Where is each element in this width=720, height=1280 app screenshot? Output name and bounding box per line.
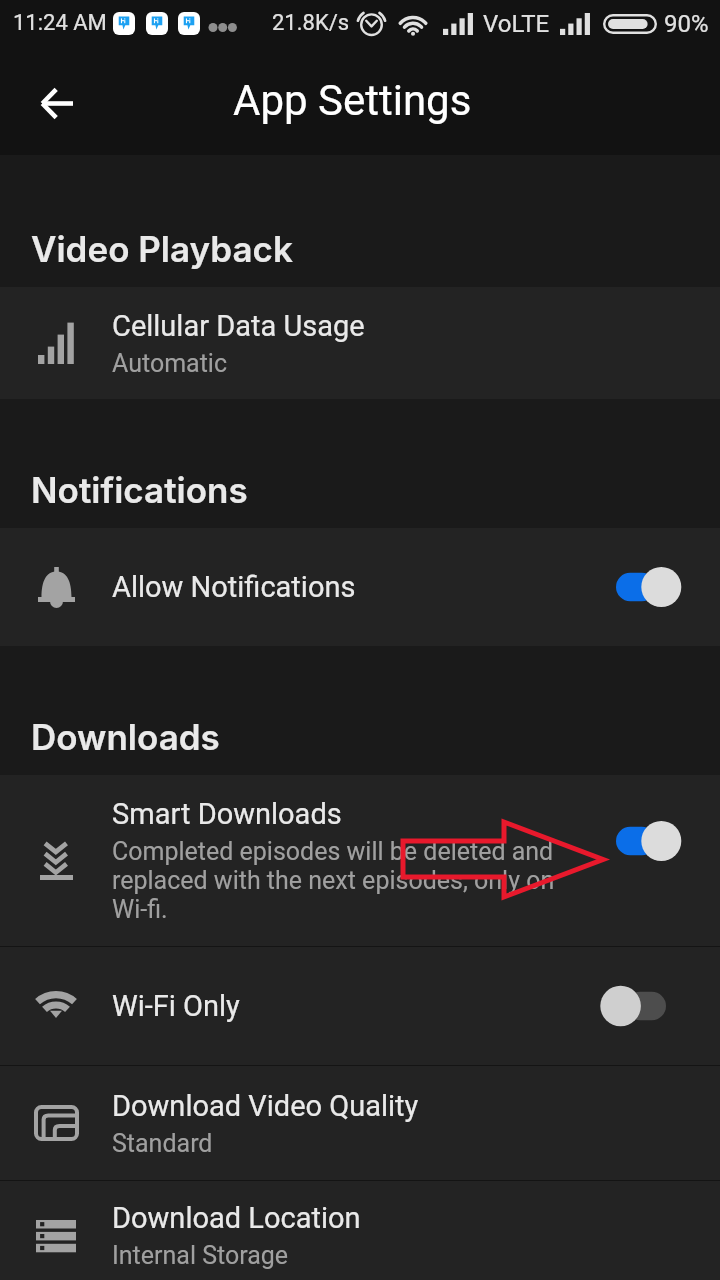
staticText: 11:24 AM [13, 10, 107, 36]
button[interactable]: Smart Downloads [0, 775, 720, 946]
button[interactable]: Wi-Fi Only [0, 947, 720, 1065]
button[interactable]: Back [24, 69, 88, 133]
staticText: Notifications [31, 469, 248, 511]
staticText: Internal Storage [112, 1241, 289, 1270]
staticText: Cellular Data Usage [112, 309, 365, 343]
staticText: Standard [112, 1129, 213, 1158]
staticText: Automatic [112, 349, 228, 378]
button[interactable]: Download Video Quality [0, 1066, 720, 1180]
staticText: Downloads [31, 716, 220, 758]
staticText: 90% [664, 10, 709, 38]
staticText: Video Playback [31, 228, 293, 270]
button[interactable]: Toggle off [600, 985, 682, 1027]
staticText: Download Video Quality [112, 1089, 419, 1123]
button[interactable]: Toggle on [600, 566, 682, 608]
staticText: Smart Downloads [112, 797, 342, 831]
staticText: Completed episodes will be deleted and r… [112, 837, 582, 924]
staticText: 21.8K/s [272, 10, 350, 36]
staticText: Wi-Fi Only [112, 989, 240, 1023]
staticText: Download Location [112, 1201, 361, 1235]
staticText: Allow Notifications [112, 570, 356, 604]
button[interactable]: Allow Notifications [0, 528, 720, 646]
button[interactable]: Download Location [0, 1181, 720, 1280]
button[interactable]: Toggle on [600, 820, 682, 862]
button[interactable]: Cellular Data Usage [0, 287, 720, 399]
staticText: App Settings [233, 76, 472, 125]
staticText: VoLTE [483, 10, 550, 38]
